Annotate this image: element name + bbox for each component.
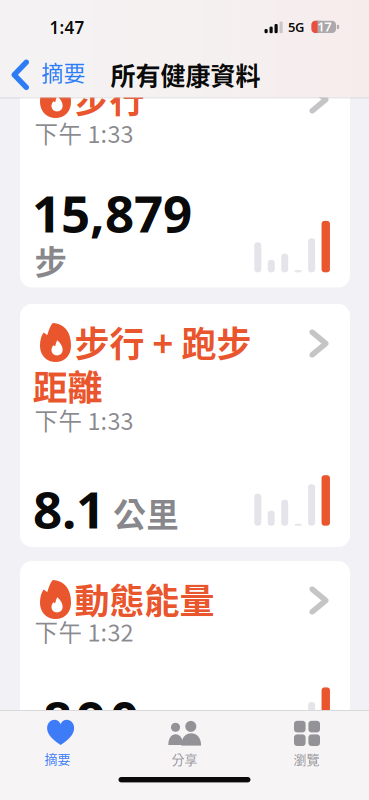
staticText: 所有健康資料 [110,56,260,92]
staticText: 0 [110,684,139,753]
button[interactable]: 步行 [20,60,350,287]
staticText: 分享 [171,749,197,768]
staticText: 5G [288,18,304,36]
staticText: 摘要 [42,56,86,88]
staticText: 步行 [74,72,144,123]
button[interactable]: 摘要 [0,710,123,776]
staticText: 下午 1:32 [35,614,134,648]
staticText: 動態能量 [74,573,214,624]
staticText: 摘要 [44,749,70,768]
staticText: 下午 1:33 [35,116,134,150]
button[interactable]: 動態能量 [20,561,350,788]
staticText: 卡路里 [36,738,135,785]
staticText: 8.1 [33,474,105,543]
staticText: 步 [34,237,67,284]
staticText: 8 [43,684,72,753]
staticText: 距離 [33,360,103,411]
staticText: 17 [317,18,331,35]
staticText: 公里 [113,489,179,536]
staticText: 瀏覽 [293,749,319,768]
staticText: 下午 1:33 [35,403,134,437]
staticText: 15,879 [32,178,192,247]
button[interactable]: 摘要 [8,54,94,96]
staticText: 步行 + 跑步 [74,316,251,367]
button[interactable]: 步行 + 跑步 [20,304,350,547]
button[interactable]: 分享 [123,710,246,776]
staticText: 9 [76,684,105,753]
staticText: 1:47 [49,16,84,39]
button[interactable]: 瀏覽 [246,710,369,776]
